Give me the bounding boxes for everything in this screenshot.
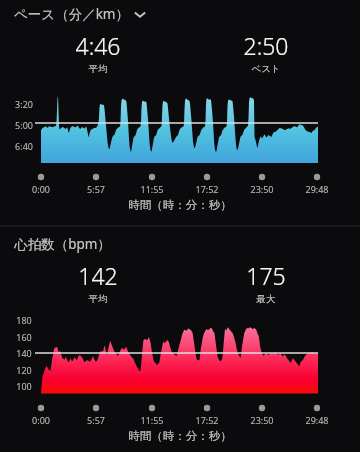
staticText: 11:55 [132,414,172,426]
staticText: 6:40 [12,140,36,152]
staticText: 時間（時：分：秒） [0,198,360,212]
staticText: 5:57 [76,414,116,426]
button[interactable]: 心拍数（bpm） [14,234,111,254]
staticText: 17:52 [187,183,227,195]
staticText: 180 [12,314,36,326]
staticText: 5:57 [76,183,116,195]
staticText: 29:48 [297,414,337,426]
staticText: 29:48 [297,183,337,195]
staticText: ベスト [216,63,316,75]
staticText: 23:50 [242,414,282,426]
staticText: 3:20 [12,98,36,110]
staticText: 23:50 [242,183,282,195]
staticText: 120 [12,364,36,376]
staticText: 142 [48,260,148,291]
staticText: 2:50 [216,30,316,61]
staticText: 100 [12,380,36,392]
staticText: 最大 [216,293,316,305]
staticText: 4:46 [48,30,148,61]
staticText: 11:55 [132,183,172,195]
staticText: 0:00 [21,414,61,426]
staticText: 平均 [48,293,148,305]
staticText: ペース（分／km） [14,5,129,23]
staticText: 175 [216,260,316,291]
staticText: 心拍数（bpm） [14,235,111,253]
staticText: 17:52 [187,414,227,426]
staticText: 時間（時：分：秒） [0,429,360,443]
staticText: 平均 [48,63,148,75]
staticText: 0:00 [21,183,61,195]
staticText: 160 [12,331,36,343]
button[interactable]: ペース（分／km） [14,4,147,24]
staticText: 140 [12,347,36,359]
staticText: 5:00 [12,119,36,131]
